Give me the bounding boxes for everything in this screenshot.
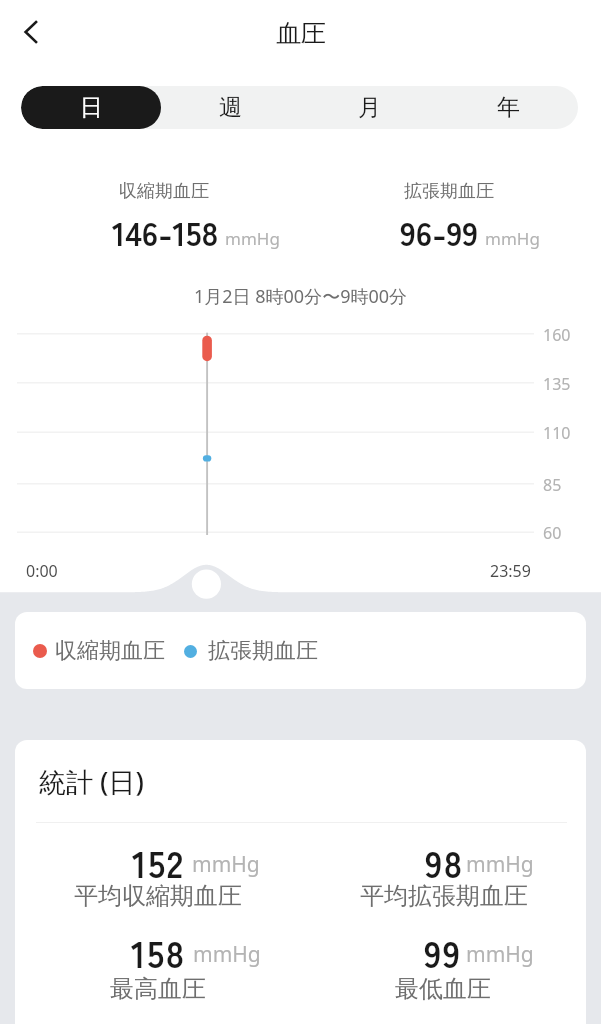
staticText: 23:59 <box>490 560 531 582</box>
staticText: 158 <box>131 926 186 978</box>
staticText: mmHg <box>466 940 534 969</box>
staticText: 135 <box>543 373 571 395</box>
staticText: mmHg <box>466 850 534 879</box>
staticText: mmHg <box>485 227 540 250</box>
staticText: 平均拡張期血圧 <box>360 881 528 911</box>
button[interactable]: 年 <box>439 86 578 129</box>
staticText: 96-99 <box>400 208 479 256</box>
button[interactable]: 日 <box>21 86 161 129</box>
staticText: 収縮期血圧 <box>55 637 165 665</box>
staticText: 収縮期血圧 <box>119 180 209 203</box>
staticText: 拡張期血圧 <box>404 180 494 203</box>
staticText: 160 <box>543 324 571 346</box>
staticText: 血圧 <box>276 18 326 49</box>
button[interactable]: 月 <box>300 86 439 129</box>
staticText: mmHg <box>225 227 280 250</box>
staticText: 60 <box>543 522 562 544</box>
staticText: 85 <box>543 474 562 496</box>
staticText: 146-158 <box>112 208 219 256</box>
staticText: 年 <box>497 93 520 122</box>
staticText: 最高血圧 <box>110 974 206 1004</box>
staticText: 98 <box>425 836 464 888</box>
staticText: mmHg <box>193 940 261 969</box>
staticText: 110 <box>543 422 571 444</box>
button[interactable]: 収縮期血圧 <box>15 612 586 689</box>
staticText: 152 <box>132 836 185 888</box>
button[interactable]: Back <box>9 10 53 54</box>
staticText: 月 <box>358 93 381 122</box>
staticText: 拡張期血圧 <box>208 637 318 665</box>
staticText: 99 <box>424 926 462 978</box>
staticText: 1月2日 8時00分〜9時00分 <box>0 284 601 309</box>
staticText: 平均収縮期血圧 <box>74 881 242 911</box>
button[interactable]: 週 <box>161 86 300 129</box>
staticText: 週 <box>219 93 242 122</box>
staticText: 0:00 <box>26 560 58 582</box>
staticText: 最低血圧 <box>395 974 491 1004</box>
staticText: 統計 (日) <box>39 763 144 800</box>
staticText: 日 <box>80 93 103 122</box>
staticText: mmHg <box>192 850 260 879</box>
